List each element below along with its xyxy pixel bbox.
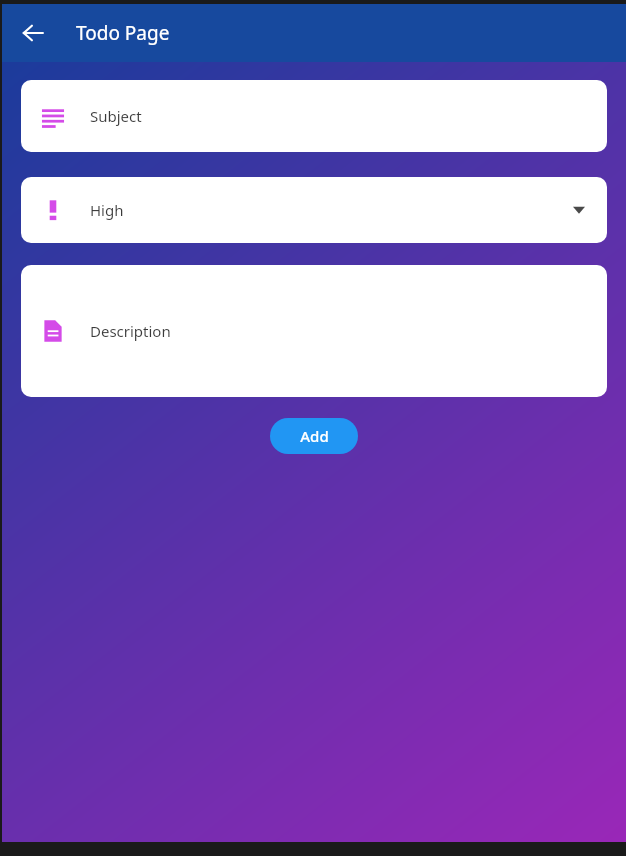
staticText: Add xyxy=(300,426,329,446)
button[interactable]: Open priority dropdown xyxy=(561,192,597,228)
button[interactable]: Add xyxy=(270,418,358,454)
staticText: Description xyxy=(90,321,171,341)
staticText: Todo Page xyxy=(76,20,170,46)
staticText: High xyxy=(90,200,124,220)
button[interactable]: Back xyxy=(12,12,54,54)
button[interactable]: Subject xyxy=(21,80,607,152)
staticText: Subject xyxy=(90,106,142,126)
button[interactable]: Description xyxy=(21,265,607,397)
button[interactable]: High xyxy=(21,177,607,243)
